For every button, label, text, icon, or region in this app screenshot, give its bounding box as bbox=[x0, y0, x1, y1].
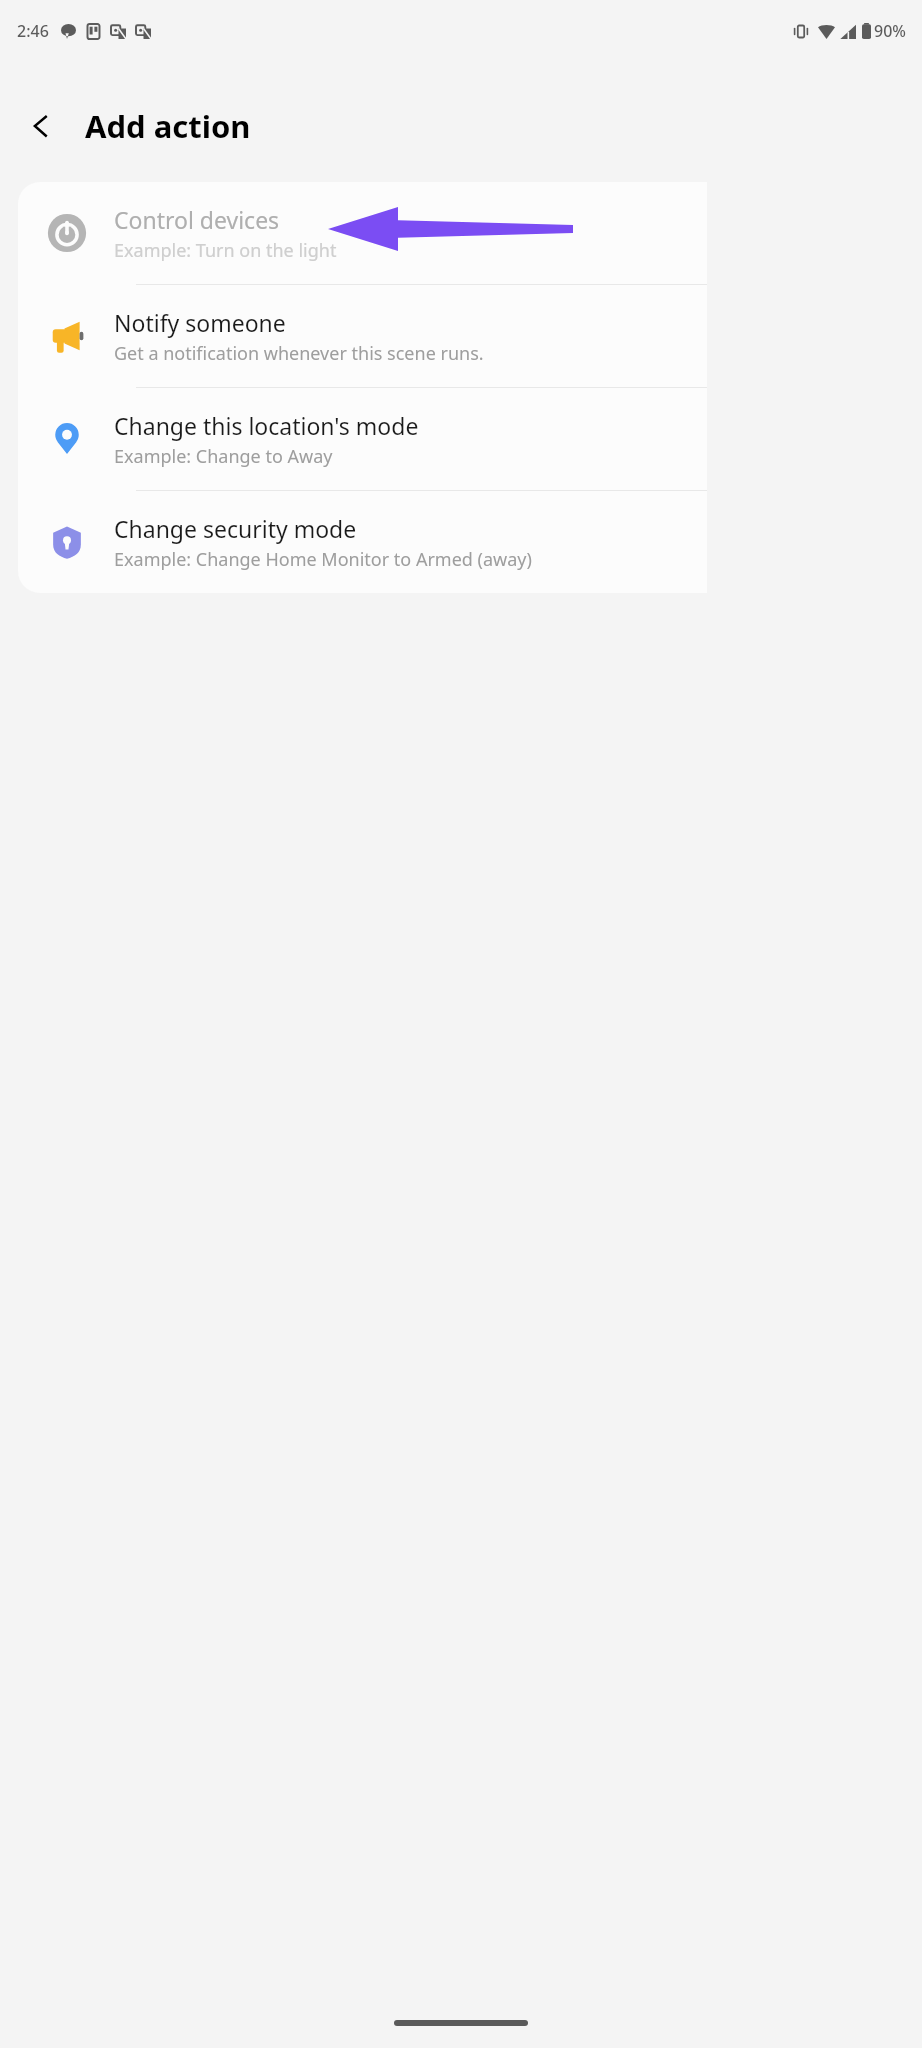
staticText: Example: Change to Away bbox=[114, 444, 333, 469]
staticText: Control devices bbox=[114, 204, 280, 235]
staticText: Example: Change Home Monitor to Armed (a… bbox=[114, 547, 532, 572]
button[interactable]: Control devices bbox=[18, 182, 707, 284]
staticText: Change this location's mode bbox=[114, 410, 419, 441]
staticText: Example: Turn on the light bbox=[114, 238, 337, 263]
button[interactable]: Change security mode bbox=[18, 491, 707, 593]
button[interactable]: Notify someone bbox=[18, 285, 707, 387]
staticText: Notify someone bbox=[114, 307, 286, 338]
staticText: 2:46 bbox=[17, 20, 49, 42]
staticText: 90% bbox=[874, 20, 906, 42]
button[interactable]: Back bbox=[17, 102, 65, 150]
staticText: Change security mode bbox=[114, 513, 357, 544]
staticText: Get a notification whenever this scene r… bbox=[114, 341, 484, 366]
staticText: Add action bbox=[85, 105, 251, 147]
button[interactable]: Change this location's mode bbox=[18, 388, 707, 490]
